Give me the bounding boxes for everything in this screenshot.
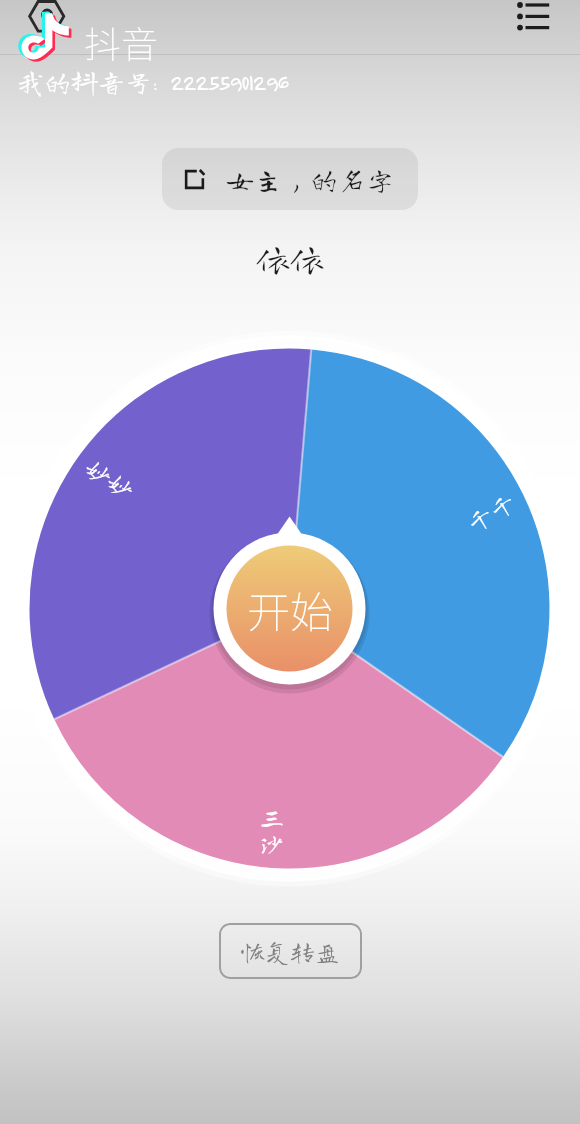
staticText: 抖音 <box>84 15 158 69</box>
button[interactable]: 恢复转盘 <box>219 923 362 979</box>
staticText: 恢复转盘 <box>240 939 341 964</box>
staticText: 沙 <box>259 830 286 856</box>
staticText: 开始 <box>247 578 333 640</box>
staticText: 三 <box>259 804 286 830</box>
staticText: 妙妙 <box>81 453 140 503</box>
staticText: 我的抖音号: 22255901296 <box>17 68 288 95</box>
staticText: 女主，的名字 <box>226 165 395 193</box>
button[interactable]: 开始 <box>227 546 353 672</box>
button[interactable]: 女主，的名字 <box>162 148 418 210</box>
button[interactable]: Menu <box>504 0 560 44</box>
staticText: 千千 <box>462 487 521 536</box>
staticText: 依依 <box>0 241 580 275</box>
